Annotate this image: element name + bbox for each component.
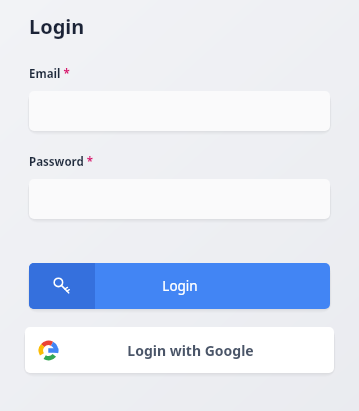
other: Key [53, 277, 71, 295]
staticText: Login [162, 277, 198, 295]
staticText: Email * [29, 66, 70, 82]
staticText: Password * [29, 154, 94, 170]
button[interactable]: Google [25, 327, 334, 373]
button[interactable]: Key [29, 263, 330, 309]
other: Google [38, 340, 59, 361]
staticText: Login with Google [127, 341, 254, 360]
staticText: Login [29, 13, 85, 40]
